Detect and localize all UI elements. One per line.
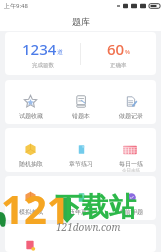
button[interactable]: 1234 (5, 32, 80, 75)
staticText: 历年真题 (69, 208, 93, 216)
button[interactable]: 试题收藏 (5, 80, 56, 124)
staticText: 正确率 (110, 62, 127, 69)
staticText: 每日一练 (119, 160, 143, 168)
button[interactable]: 专项练习 (5, 224, 56, 252)
button[interactable]: 每日一练 (106, 128, 156, 172)
staticText: 章节练习 (69, 160, 93, 168)
staticText: 上午9:48 (4, 2, 28, 10)
staticText: 模拟考试 (19, 208, 43, 216)
staticText: 完成题数 (32, 62, 54, 69)
staticText: 随机抽取 (19, 160, 43, 168)
button[interactable]: 章节练习 (56, 128, 106, 172)
staticText: 道 (57, 48, 63, 56)
staticText: 60 (107, 39, 125, 59)
staticText: 下载站 (55, 190, 136, 224)
button[interactable]: 60 (81, 32, 156, 75)
button[interactable]: 模拟考试 (5, 176, 56, 220)
staticText: 做题记录 (119, 112, 143, 120)
staticText: 考前押题 (119, 208, 143, 216)
staticText: 1234 (22, 39, 57, 59)
button[interactable]: 做题记录 (106, 80, 156, 124)
staticText: 今日未练 (122, 168, 140, 172)
button[interactable]: 错题本 (56, 80, 106, 124)
button[interactable]: 历年真题 (56, 176, 106, 220)
staticText: 121down.com (56, 220, 121, 234)
staticText: 试题收藏 (19, 112, 43, 120)
button[interactable]: 考前押题 (106, 176, 156, 220)
button[interactable]: 随机抽取 (5, 128, 56, 172)
staticText: % (125, 48, 130, 56)
staticText: 错题本 (72, 112, 90, 120)
staticText: 题库 (72, 16, 90, 27)
staticText: 121 (1, 181, 70, 235)
